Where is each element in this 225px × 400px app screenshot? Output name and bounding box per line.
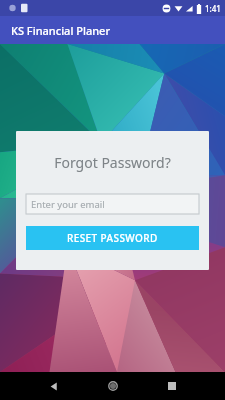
button[interactable]: RESET PASSWORD	[26, 226, 199, 250]
button[interactable]: Enter your email	[26, 194, 199, 214]
button[interactable]: Recent apps	[161, 375, 183, 397]
staticText: KS Financial Planer	[11, 23, 111, 38]
button[interactable]: Back	[42, 375, 64, 397]
staticText: Enter your email	[31, 198, 105, 211]
button[interactable]: Home	[102, 375, 124, 397]
staticText: Forgot Password?	[26, 153, 199, 172]
staticText: RESET PASSWORD	[67, 231, 158, 245]
staticText: 1:41	[205, 3, 221, 14]
